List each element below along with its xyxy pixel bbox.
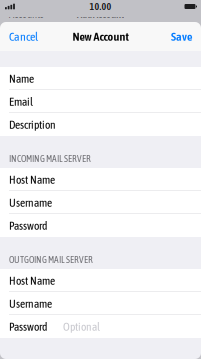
staticText: Username bbox=[9, 196, 52, 209]
staticText: Add Account bbox=[77, 8, 124, 20]
button[interactable]: Username bbox=[0, 292, 201, 315]
staticText: Host Name bbox=[9, 173, 55, 186]
staticText: Description bbox=[9, 118, 56, 131]
staticText: Username bbox=[9, 297, 52, 310]
staticText: Optional bbox=[63, 320, 100, 333]
staticText: Password bbox=[9, 219, 47, 232]
staticText: Email bbox=[9, 95, 33, 108]
staticText: Password bbox=[9, 320, 47, 333]
staticText: ‹ Accounts bbox=[5, 8, 44, 20]
button[interactable]: Save bbox=[162, 22, 201, 51]
button[interactable]: Email bbox=[0, 90, 201, 113]
button[interactable]: Cancel bbox=[0, 22, 47, 51]
button[interactable]: Host Name bbox=[0, 269, 201, 292]
button[interactable]: Description bbox=[0, 113, 201, 136]
staticText: OUTGOING MAIL SERVER bbox=[9, 254, 93, 265]
staticText: New Account bbox=[72, 30, 128, 43]
button[interactable]: Password bbox=[0, 214, 201, 237]
staticText: Name bbox=[9, 72, 34, 85]
button[interactable]: Username bbox=[0, 191, 201, 214]
button[interactable]: Host Name bbox=[0, 168, 201, 191]
staticText: 10.00 bbox=[89, 1, 111, 12]
button[interactable]: Name bbox=[0, 67, 201, 90]
staticText: INCOMING MAIL SERVER bbox=[9, 153, 91, 164]
staticText: Save bbox=[171, 30, 192, 43]
button[interactable]: Password bbox=[0, 315, 201, 338]
staticText: Host Name bbox=[9, 274, 55, 287]
staticText: Cancel bbox=[9, 30, 38, 43]
